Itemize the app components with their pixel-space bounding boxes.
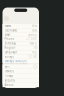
button[interactable]: Manage Account — [2, 59, 39, 63]
staticText: US — [34, 46, 37, 50]
staticText: Email — [4, 33, 10, 36]
button[interactable]: Devices — [2, 69, 39, 73]
staticText: Language — [4, 50, 17, 54]
button[interactable]: Profile — [2, 13, 39, 24]
staticText: Alex — [32, 24, 37, 28]
button[interactable]: Security — [2, 78, 39, 83]
button[interactable]: Region — [2, 46, 39, 50]
staticText: Mar 4 — [30, 42, 37, 45]
staticText: Storage — [4, 55, 14, 58]
staticText: Region — [4, 46, 15, 50]
staticText: Birthday — [4, 42, 15, 45]
button[interactable]: Language — [2, 50, 39, 54]
button[interactable]: About — [2, 83, 39, 87]
staticText: Privacy — [4, 74, 12, 77]
staticText: Manage Account — [4, 59, 26, 63]
button[interactable]: Username — [2, 28, 39, 32]
staticText: Devices — [4, 69, 13, 73]
button[interactable]: Birthday — [2, 41, 39, 46]
staticText: Signed in as alex — [4, 62, 26, 65]
button[interactable]: Privacy — [2, 73, 39, 78]
staticText: alexc — [32, 29, 37, 32]
staticText: Eng — [32, 50, 37, 54]
button[interactable]: Name — [2, 24, 39, 28]
staticText: About — [4, 83, 13, 87]
staticText: 12 GB — [28, 55, 37, 58]
staticText: Phone — [4, 37, 14, 41]
staticText: Security — [4, 79, 14, 82]
staticText: +1 555 — [26, 37, 37, 41]
button[interactable]: Sync — [2, 64, 39, 69]
button[interactable]: Email — [2, 33, 39, 37]
staticText: Sync — [4, 65, 9, 68]
staticText: Name — [4, 24, 11, 28]
button[interactable]: Phone — [2, 37, 39, 41]
staticText: a@m.co — [28, 33, 37, 36]
staticText: Username — [4, 29, 17, 32]
button[interactable]: Storage — [2, 54, 39, 59]
